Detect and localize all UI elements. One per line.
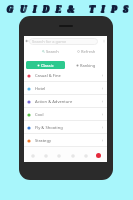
staticText: Strategy: [35, 138, 52, 144]
staticText: Hotel: [35, 86, 46, 92]
staticText: GUIDE& TIPS: [6, 3, 133, 15]
button[interactable]: Add: [94, 151, 103, 160]
button[interactable]: Hotel: [24, 82, 107, 95]
button[interactable]: Tab: [28, 151, 37, 160]
button[interactable]: Ranking: [66, 61, 105, 69]
button[interactable]: Cool: [24, 108, 107, 121]
button[interactable]: Strategy: [24, 134, 107, 147]
button[interactable]: Refresh: [68, 46, 105, 56]
staticText: Cool: [35, 112, 44, 118]
staticText: Fly & Shooting: [35, 125, 63, 131]
staticText: Refresh: [81, 49, 96, 54]
button[interactable]: Search: [32, 46, 68, 56]
button[interactable]: Classic: [26, 61, 65, 69]
staticText: Ranking: [80, 63, 96, 68]
button[interactable]: Action & Adventure: [24, 95, 107, 108]
staticText: GUIDE& TIPS: [7, 3, 133, 15]
button[interactable]: Tab: [68, 151, 77, 160]
button[interactable]: Casual & Fine: [24, 69, 107, 82]
button[interactable]: Back: [25, 39, 29, 43]
staticText: Action & Adventure: [35, 99, 73, 105]
staticText: Search for a game: [32, 39, 67, 44]
staticText: Classic: [41, 63, 54, 68]
button[interactable]: Tab: [41, 151, 50, 160]
button[interactable]: Search for a game: [29, 38, 98, 45]
button[interactable]: More options: [102, 39, 106, 43]
staticText: Casual & Fine: [35, 73, 61, 79]
staticText: GUIDE& TIPS: [6, 4, 133, 16]
staticText: Search: [46, 49, 59, 54]
staticText: GUIDE& TIPS: [7, 4, 133, 16]
button[interactable]: Tab: [81, 151, 90, 160]
button[interactable]: Tab: [54, 151, 63, 160]
button[interactable]: Fly & Shooting: [24, 121, 107, 134]
